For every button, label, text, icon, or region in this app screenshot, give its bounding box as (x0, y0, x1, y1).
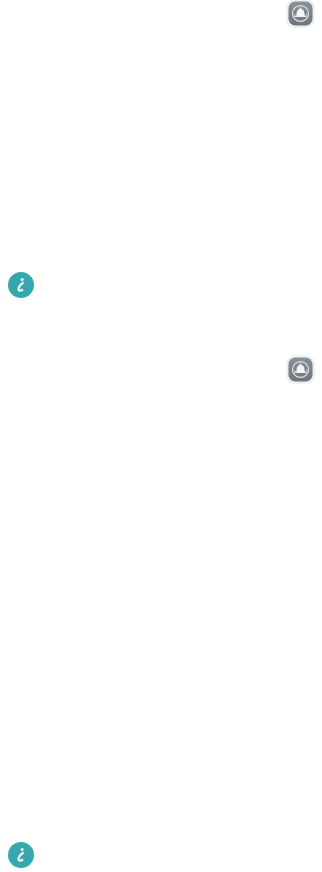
button[interactable]: Information (8, 842, 34, 868)
button[interactable]: Information (8, 272, 34, 298)
button[interactable]: Alarm (286, 0, 315, 28)
button[interactable]: Alarm (286, 355, 315, 384)
